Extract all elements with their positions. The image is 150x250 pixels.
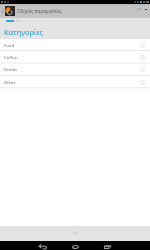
button[interactable]: Done [134,4,143,18]
staticText: Coffee [4,54,18,60]
staticText: Other [4,79,16,85]
button[interactable]: Other [0,76,150,88]
button[interactable]: Food [0,39,150,51]
button[interactable]: Coffee [0,51,150,63]
staticText: Drinks [4,66,18,72]
staticText: Οδηγός παραγγελίας [17,8,62,14]
staticText: Ad [72,230,79,237]
button[interactable]: Home [64,241,86,250]
staticText: Food [4,42,15,48]
button[interactable]: Drinks [0,63,150,75]
button[interactable]: Recent apps [96,241,118,250]
staticText: Κατηγορίες [4,27,44,37]
button[interactable]: Navigate up [0,4,5,18]
button[interactable]: More options [143,4,149,18]
button[interactable]: Back [32,241,54,250]
